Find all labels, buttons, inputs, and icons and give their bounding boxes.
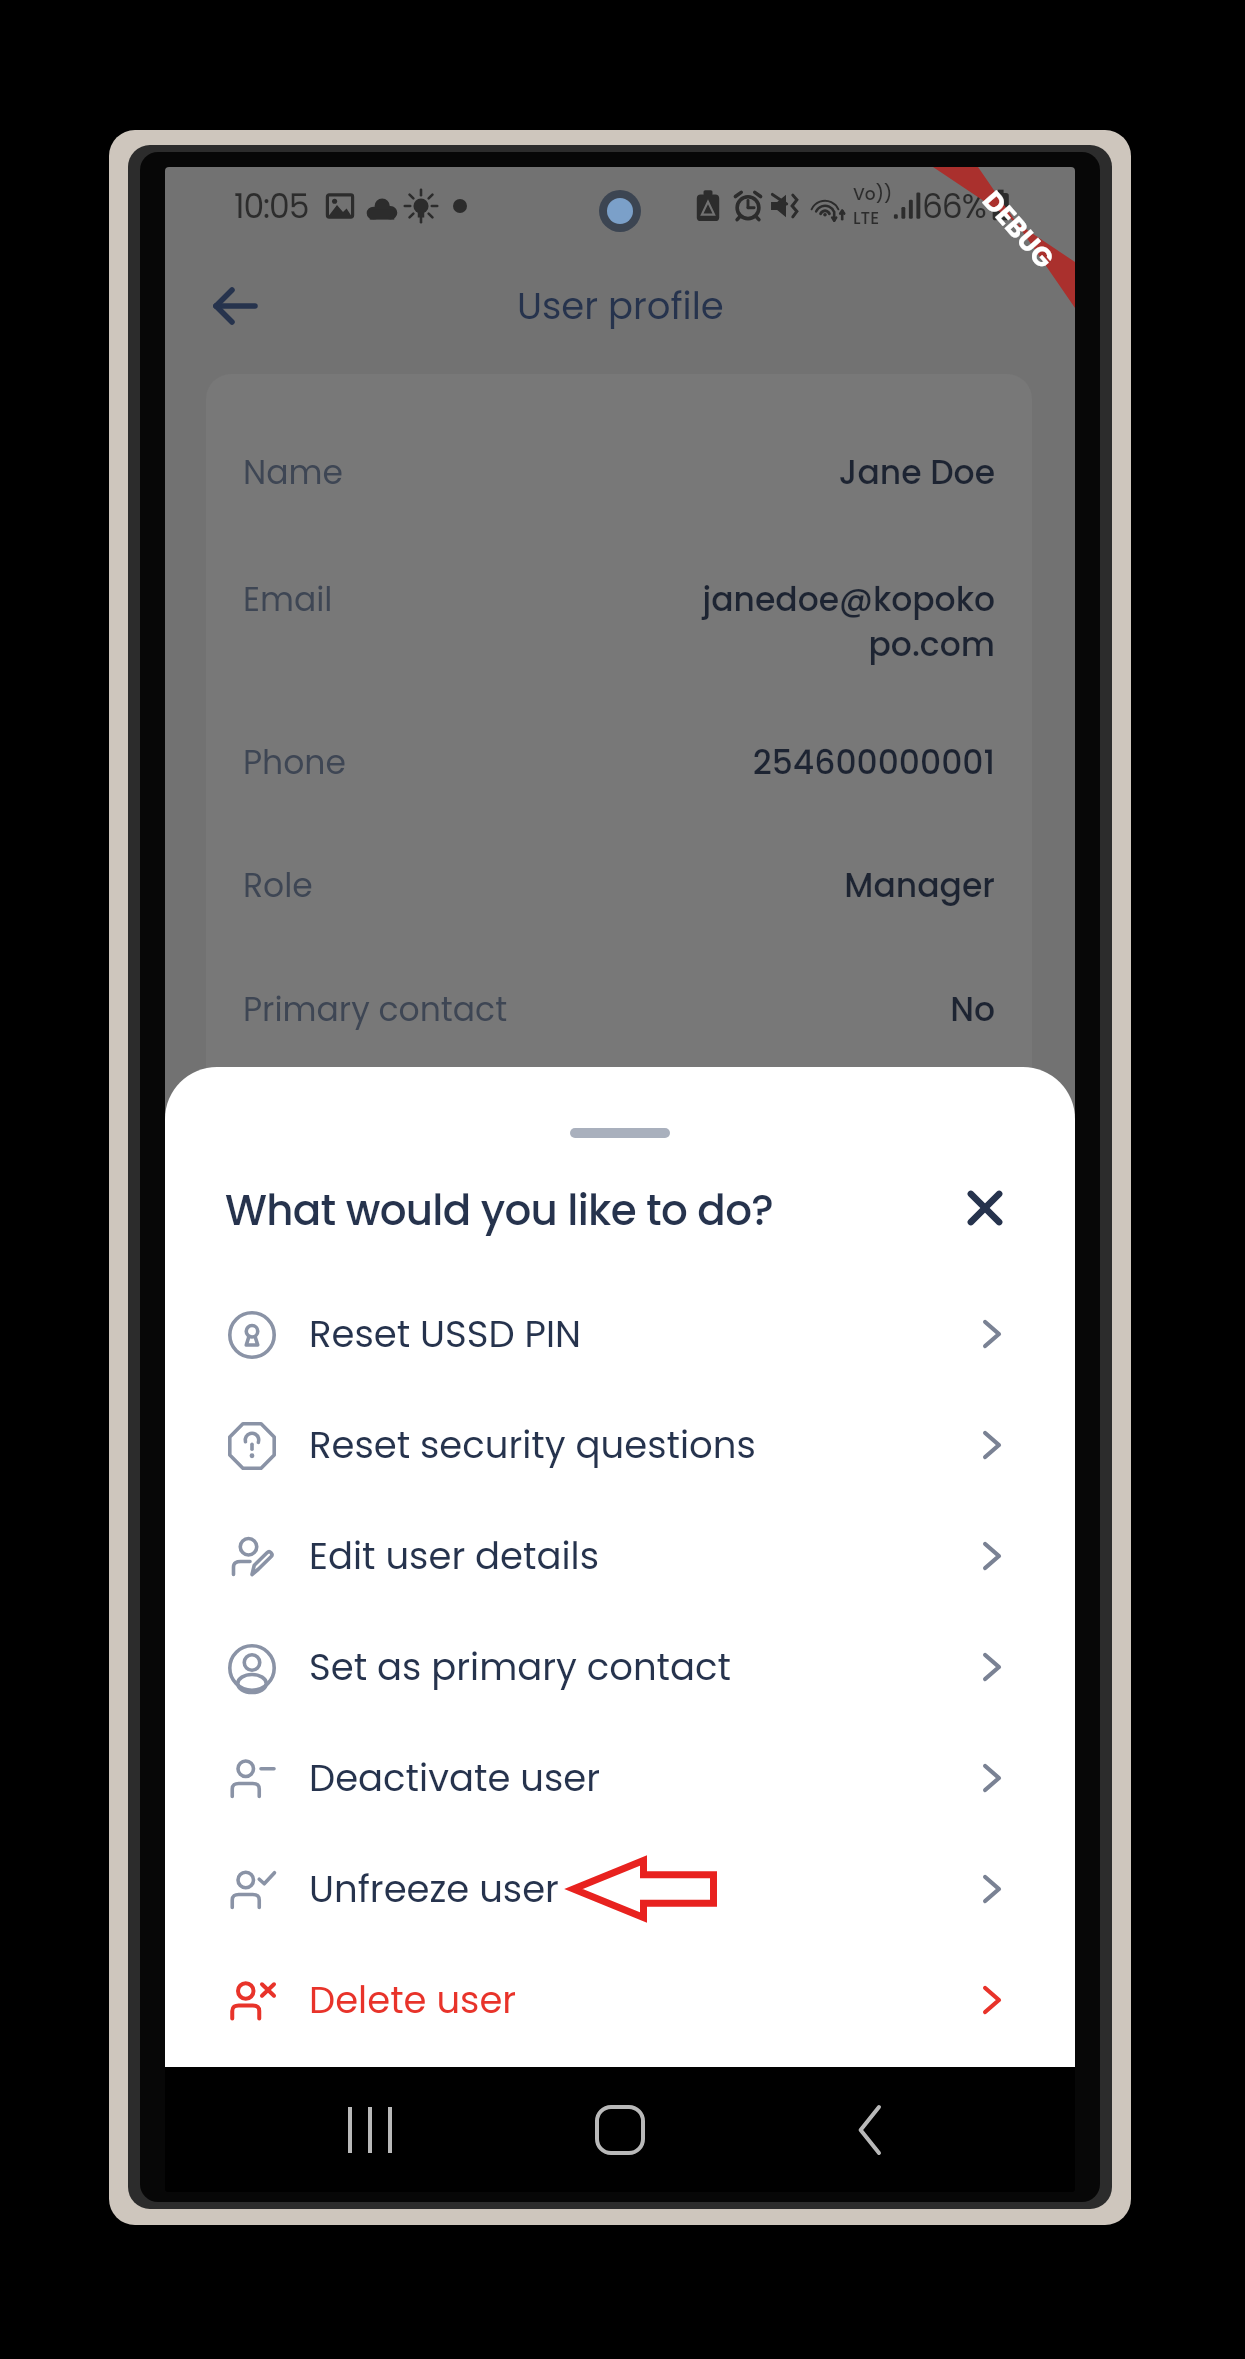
button[interactable]: Back [825, 2085, 915, 2175]
button[interactable]: Edit user details [165, 1500, 1075, 1611]
button[interactable]: Reset security questions [165, 1389, 1075, 1500]
button[interactable]: Delete user [165, 1944, 1075, 2055]
staticText: Email [243, 576, 333, 622]
staticText: Deactivate user [309, 1752, 600, 1804]
staticText: 254600000001 [752, 739, 995, 785]
button[interactable]: Recent apps [325, 2085, 415, 2175]
button[interactable]: Unfreeze user [165, 1833, 1075, 1944]
button[interactable]: Close [961, 1184, 1009, 1232]
staticText: User profile [517, 280, 724, 332]
staticText: Role [243, 862, 313, 908]
staticText: janedoe@kopoko po.com [702, 576, 995, 668]
button[interactable]: Set as primary contact [165, 1611, 1075, 1722]
staticText: Edit user details [309, 1530, 600, 1582]
staticText: Vo)) [853, 182, 893, 206]
staticText: LTE [853, 206, 880, 230]
staticText: Unfreeze user [309, 1863, 559, 1915]
staticText: Delete user [309, 1974, 517, 2026]
button[interactable]: Reset USSD PIN [165, 1278, 1075, 1389]
staticText: No [950, 986, 995, 1032]
staticText: Manager [844, 862, 995, 908]
button[interactable]: Deactivate user [165, 1722, 1075, 1833]
staticText: What would you like to do? [225, 1181, 774, 1240]
staticText: Jane Doe [838, 449, 995, 495]
button[interactable]: Back [196, 266, 276, 346]
staticText: 66% [922, 183, 986, 229]
staticText: DEBUG [973, 183, 1062, 277]
staticText: Reset security questions [309, 1419, 756, 1471]
staticText: Primary contact [243, 986, 508, 1032]
button[interactable]: Home [575, 2085, 665, 2175]
staticText: Name [243, 449, 343, 495]
staticText: Reset USSD PIN [309, 1308, 582, 1360]
staticText: Set as primary contact [309, 1641, 731, 1693]
staticText: 10:05 [234, 183, 309, 229]
staticText: Phone [243, 739, 346, 785]
